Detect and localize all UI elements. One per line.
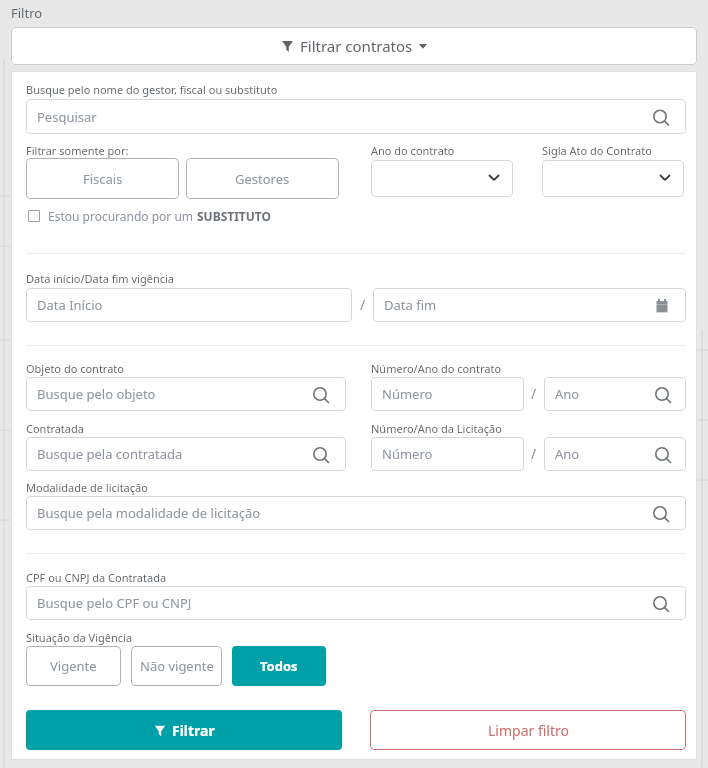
staticText: Número bbox=[382, 385, 433, 403]
button[interactable]: Todos bbox=[232, 646, 326, 686]
staticText: Filtro bbox=[11, 4, 43, 22]
button[interactable]: Sigla Ato do Contrato bbox=[542, 160, 684, 197]
button[interactable]: Busque pelo objeto bbox=[26, 377, 346, 411]
button[interactable]: Filtrar bbox=[26, 710, 342, 750]
button[interactable]: Ano do contrato bbox=[371, 160, 513, 197]
staticText: Fiscais bbox=[83, 170, 123, 188]
button[interactable]: Pesquisar bbox=[26, 99, 686, 134]
button[interactable]: Filtrar contratos bbox=[11, 27, 697, 65]
staticText: Ano bbox=[555, 385, 580, 403]
staticText: / bbox=[531, 384, 537, 403]
button[interactable]: Número bbox=[371, 437, 524, 471]
staticText: / bbox=[531, 444, 537, 463]
staticText: SUBSTITUTO bbox=[197, 208, 272, 224]
button[interactable]: Busque pela contratada bbox=[26, 437, 346, 471]
staticText: CPF ou CNPJ da Contratada bbox=[26, 570, 167, 585]
staticText: Busque pelo CPF ou CNPJ bbox=[37, 594, 192, 612]
staticText: Estou procurando por um bbox=[48, 208, 197, 224]
staticText: Data fim bbox=[384, 296, 437, 314]
staticText: Número/Ano do contrato bbox=[371, 361, 502, 376]
button[interactable]: Número bbox=[371, 377, 524, 411]
button[interactable]: Ano bbox=[544, 377, 686, 411]
staticText: Pesquisar bbox=[37, 108, 97, 126]
staticText: Modalidade de licitação bbox=[26, 480, 148, 495]
button[interactable]: Data fim bbox=[373, 288, 686, 322]
button[interactable]: Busque pela modalidade de licitação bbox=[26, 496, 686, 530]
staticText: Número/Ano da Licitação bbox=[371, 421, 502, 436]
staticText: Número bbox=[382, 445, 433, 463]
staticText: Objeto do contrato bbox=[26, 361, 124, 376]
button[interactable]: Fiscais bbox=[26, 158, 179, 199]
staticText: Data Início bbox=[37, 296, 103, 314]
staticText: Busque pela modalidade de licitação bbox=[37, 504, 261, 522]
button[interactable]: Gestores bbox=[186, 158, 339, 199]
staticText: Data início/Data fim vigência bbox=[26, 271, 174, 286]
staticText: Busque pelo nome do gestor, fiscal ou su… bbox=[26, 82, 278, 97]
button[interactable]: Busque pelo CPF ou CNPJ bbox=[26, 586, 686, 620]
staticText: / bbox=[360, 295, 366, 314]
staticText: Ano do contrato bbox=[371, 143, 455, 158]
staticText: Limpar filtro bbox=[488, 721, 569, 740]
staticText: Ano bbox=[555, 445, 580, 463]
staticText: Vigente bbox=[50, 657, 97, 675]
button[interactable]: Vigente bbox=[26, 646, 121, 686]
staticText: Todos bbox=[260, 657, 298, 675]
staticText: Gestores bbox=[235, 170, 290, 188]
button[interactable]: Não vigente bbox=[131, 646, 222, 686]
staticText: Filtrar somente por: bbox=[26, 143, 129, 158]
staticText: Filtrar bbox=[172, 721, 215, 740]
staticText: Busque pela contratada bbox=[37, 445, 183, 463]
staticText: Filtrar contratos bbox=[300, 36, 413, 56]
button[interactable]: Data Início bbox=[26, 288, 352, 322]
staticText: Situação da Vigência bbox=[26, 630, 133, 645]
staticText: Sigla Ato do Contrato bbox=[542, 143, 652, 158]
button[interactable]: Estou procurando por um bbox=[28, 208, 272, 224]
button[interactable]: Limpar filtro bbox=[370, 710, 686, 750]
button[interactable]: Ano bbox=[544, 437, 686, 471]
staticText: Contratada bbox=[26, 421, 84, 436]
staticText: Não vigente bbox=[140, 657, 214, 675]
staticText: Busque pelo objeto bbox=[37, 385, 156, 403]
